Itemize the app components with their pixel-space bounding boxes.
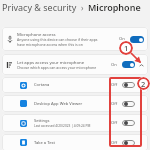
staticText: On [119, 36, 125, 42]
staticText: Last accessed 4/20/2023 | 4:09:24 PM [34, 124, 91, 128]
button[interactable]: Let apps access your microphone [2, 54, 148, 75]
button[interactable]: Microphone access [2, 27, 148, 51]
staticText: › [81, 2, 84, 13]
button[interactable]: Privacy & security [2, 1, 77, 13]
staticText: 1 [124, 43, 129, 53]
staticText: Cortana [34, 82, 50, 88]
staticText: Take a Test [34, 140, 55, 146]
staticText: Microphone access [17, 31, 56, 37]
button[interactable]: Toggle off [122, 140, 135, 146]
staticText: Settings [34, 118, 50, 124]
button[interactable]: Settings [2, 114, 148, 132]
staticText: Desktop App Web Viewer [34, 101, 83, 107]
staticText: Off [111, 140, 118, 146]
staticText: Off [111, 101, 118, 107]
staticText: Let apps access your microphone [17, 59, 85, 65]
button[interactable]: Toggle on [122, 61, 135, 68]
button[interactable]: Cortana [2, 77, 148, 93]
button[interactable]: Desktop App Web Viewer [2, 95, 148, 112]
staticText: Off [111, 82, 118, 88]
staticText: Choose which apps can access your microp… [17, 65, 97, 70]
staticText: On [111, 62, 117, 68]
staticText: Off [111, 120, 118, 126]
button[interactable]: Collapse [138, 62, 144, 68]
button[interactable]: Toggle on [130, 36, 144, 43]
button[interactable]: Toggle off [122, 101, 135, 107]
button[interactable]: Toggle off [122, 82, 135, 88]
staticText: 2 [141, 79, 146, 89]
staticText: have microphone access when this is on [17, 42, 83, 47]
button[interactable]: Toggle off [122, 120, 135, 126]
button[interactable]: Take a Test [2, 134, 148, 150]
staticText: Microphone [88, 1, 141, 13]
staticText: Anyone using this device can choose if t… [17, 37, 98, 42]
